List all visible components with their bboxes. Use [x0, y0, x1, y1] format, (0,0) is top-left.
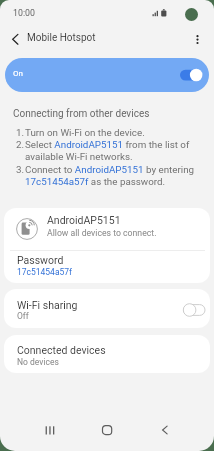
staticText: Turn on Wi-Fi on the device. [25, 127, 145, 138]
button[interactable]: On [5, 58, 209, 92]
button[interactable] [145, 417, 185, 443]
staticText: 10:00 [13, 8, 35, 18]
staticText: Password [17, 254, 64, 266]
staticText: 3. [16, 164, 25, 175]
button[interactable] [188, 29, 208, 50]
staticText: 17c51454a57f [17, 267, 73, 277]
staticText: 1. [16, 127, 25, 138]
staticText: available Wi-Fi networks. [25, 151, 133, 162]
button[interactable] [4, 250, 210, 283]
staticText: 17c51454a57f as the password. [25, 176, 166, 187]
button[interactable]: Wi-Fi sharing [4, 289, 210, 328]
button[interactable]: Connected devices [4, 335, 210, 373]
staticText: Wi-Fi sharing [17, 299, 78, 311]
button[interactable] [4, 208, 210, 250]
staticText: Off [17, 311, 29, 321]
staticText: On [13, 69, 23, 78]
staticText: Allow all devices to connect. [47, 228, 157, 238]
staticText: Select AndroidAP5151 from the list of [25, 139, 190, 150]
staticText: No devices [17, 357, 59, 367]
staticText: Connecting from other devices [13, 108, 150, 120]
staticText: Connected devices [17, 344, 106, 356]
staticText: Connect to AndroidAP5151 by entering [25, 164, 195, 175]
staticText: 2. [16, 139, 25, 150]
button[interactable] [87, 417, 127, 443]
button[interactable] [30, 417, 70, 443]
staticText: AndroidAP5151 [47, 214, 121, 226]
button[interactable] [5, 30, 25, 50]
staticText: Mobile Hotspot [27, 32, 96, 44]
